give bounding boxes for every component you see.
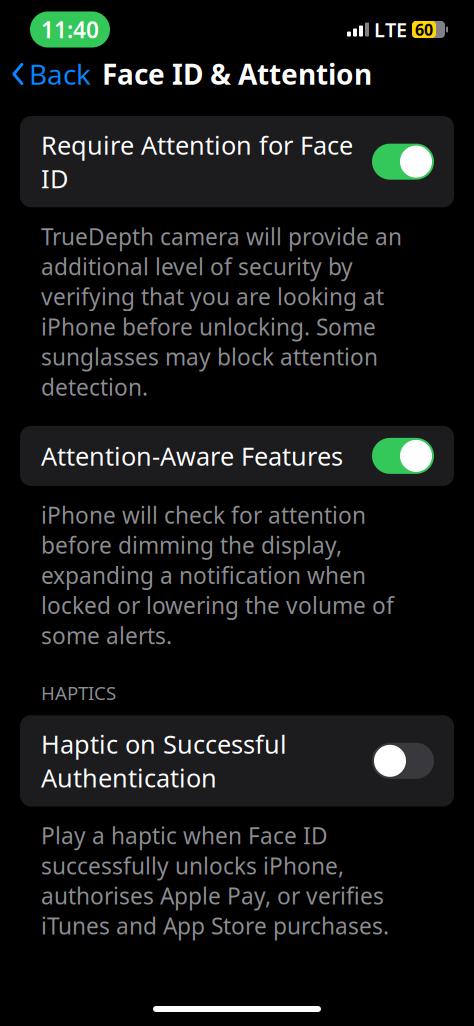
staticText: LTE [374,16,407,43]
staticText: HAPTICS [41,680,116,705]
staticText: Back [29,55,91,93]
staticText: 60 [415,19,433,40]
button[interactable]: Require Attention for Face ID [20,116,454,207]
staticText: iPhone will check for attention before d… [41,500,394,650]
staticText: Play a haptic when Face ID successfully … [41,820,389,941]
staticText: 11:40 [41,14,99,44]
button[interactable]: Back [0,47,91,101]
staticText: Face ID & Attention [102,55,372,93]
button[interactable]: Attention-Aware Features [20,426,454,486]
staticText: Haptic on Successful Authentication [41,727,287,794]
staticText: Attention-Aware Features [41,439,343,473]
button[interactable]: Haptic on Successful Authentication [20,715,454,806]
staticText: TrueDepth camera will provide an additio… [41,221,402,402]
staticText: Require Attention for Face ID [41,128,353,195]
